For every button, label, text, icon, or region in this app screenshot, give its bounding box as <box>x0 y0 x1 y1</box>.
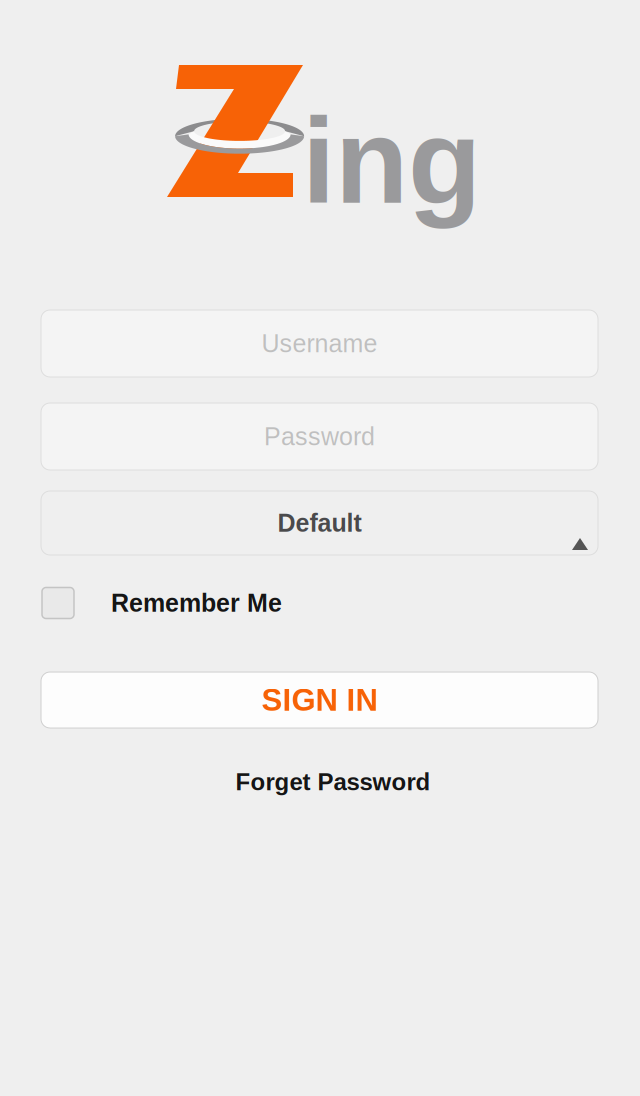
staticText: Remember Me <box>111 589 282 617</box>
button[interactable]: SIGN IN <box>41 672 598 728</box>
staticText: Default <box>277 509 361 537</box>
staticText: SIGN IN <box>261 683 377 717</box>
staticText: ing <box>302 94 481 228</box>
staticText: Forget Password <box>235 769 430 795</box>
button[interactable]: Forget Password <box>203 765 463 799</box>
staticText: Password <box>264 422 375 450</box>
button[interactable]: Default <box>41 491 598 555</box>
staticText: Username <box>261 329 377 357</box>
button[interactable]: Remember Me <box>42 586 442 620</box>
